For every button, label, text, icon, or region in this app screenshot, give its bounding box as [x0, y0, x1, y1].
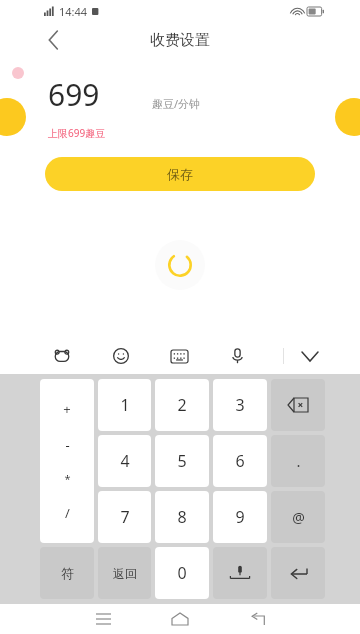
button[interactable]: 返回 [98, 547, 151, 599]
staticText: 收费设置 [150, 31, 210, 50]
button[interactable]: 9 [213, 491, 267, 543]
staticText: / [65, 504, 70, 522]
staticText: 保存 [167, 166, 193, 182]
staticText: 6 [235, 450, 245, 472]
staticText: 3 [235, 394, 245, 416]
button[interactable]: 3 [213, 379, 267, 431]
button[interactable]: 5 [155, 435, 209, 487]
button[interactable]: Space / voice [213, 547, 267, 599]
button[interactable]: Recents [88, 604, 118, 634]
staticText: . [296, 451, 301, 471]
button[interactable]: Back [243, 604, 273, 634]
button[interactable]: 0 [155, 547, 209, 599]
staticText: + [63, 400, 71, 418]
button[interactable]: 2 [155, 379, 209, 431]
button[interactable]: Home [165, 604, 195, 634]
staticText: 8 [177, 506, 187, 528]
button[interactable]: Baidu input [50, 344, 74, 368]
button[interactable]: 符 [40, 547, 94, 599]
button[interactable]: + [40, 379, 94, 543]
staticText: 9 [235, 506, 245, 528]
button[interactable]: Keyboard layout [167, 344, 191, 368]
button[interactable]: Back [38, 25, 68, 55]
staticText: 699 [48, 74, 100, 115]
staticText: 上限699趣豆 [48, 126, 106, 140]
button[interactable]: Backspace [271, 379, 325, 431]
button[interactable]: @ [271, 491, 325, 543]
button[interactable]: 7 [98, 491, 151, 543]
staticText: 1 [120, 394, 130, 416]
staticText: 4 [120, 450, 130, 472]
staticText: 5 [177, 450, 187, 472]
staticText: 符 [61, 565, 74, 581]
button[interactable]: Emoji [109, 344, 133, 368]
button[interactable]: Voice input [225, 344, 249, 368]
staticText: - [65, 436, 70, 454]
staticText: 0 [177, 562, 187, 584]
staticText: 趣豆/分钟 [152, 96, 201, 111]
staticText: @ [292, 508, 305, 527]
staticText: 14:44 [59, 4, 88, 19]
button[interactable]: 6 [213, 435, 267, 487]
button[interactable]: 1 [98, 379, 151, 431]
button[interactable]: 8 [155, 491, 209, 543]
button[interactable]: 保存 [45, 157, 315, 191]
staticText: 返回 [113, 566, 137, 581]
button[interactable]: . [271, 435, 325, 487]
staticText: * [64, 471, 71, 486]
button[interactable]: 4 [98, 435, 151, 487]
button[interactable]: Hide keyboard [298, 344, 322, 368]
staticText: 2 [177, 394, 187, 416]
button[interactable]: Enter [271, 547, 325, 599]
staticText: 7 [120, 506, 130, 528]
